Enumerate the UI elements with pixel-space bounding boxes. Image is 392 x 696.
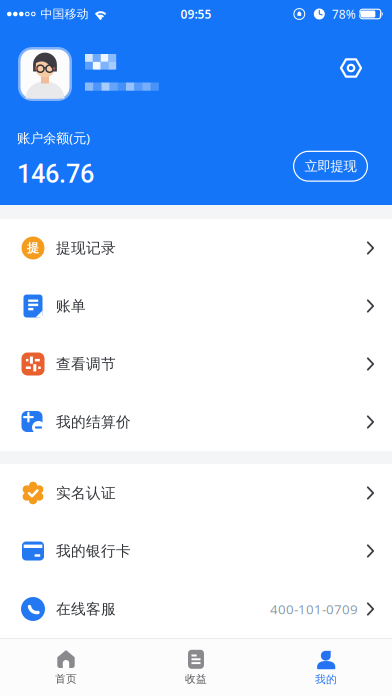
button[interactable]: 在线客服 (0, 580, 392, 638)
staticText: 78% (332, 6, 356, 22)
staticText: 09:55 (180, 6, 211, 22)
button[interactable]: 提 (0, 219, 392, 277)
button[interactable]: 设置 (340, 47, 362, 79)
staticText: 提 (27, 241, 39, 255)
staticText: 中国移动 (41, 7, 89, 21)
staticText: 查看调节 (56, 355, 116, 373)
staticText: 在线客服 (56, 600, 116, 618)
staticText: 146.76 (17, 159, 94, 189)
staticText: 我的结算价 (56, 413, 131, 431)
button[interactable]: 我的银行卡 (0, 522, 392, 580)
staticText: 账单 (56, 297, 86, 315)
button[interactable]: 实名认证 (0, 464, 392, 522)
staticText: 收益 (185, 672, 207, 685)
staticText: 我的银行卡 (56, 542, 131, 560)
button[interactable]: 账单 (0, 277, 392, 335)
staticText: 首页 (55, 672, 77, 685)
button[interactable]: 收益 (131, 640, 261, 694)
staticText: 我的 (315, 673, 337, 686)
button[interactable]: 我的 (261, 640, 391, 694)
button[interactable]: 我的结算价 (0, 393, 392, 451)
staticText: 400-101-0709 (270, 600, 358, 618)
button[interactable]: 立即提现 (293, 157, 368, 188)
staticText: 实名认证 (56, 484, 116, 502)
staticText: 提现记录 (56, 239, 116, 257)
staticText: 立即提现 (304, 158, 356, 174)
staticText: 账户余额(元) (17, 129, 90, 147)
button[interactable]: 首页 (1, 640, 131, 694)
button[interactable]: 查看调节 (0, 335, 392, 393)
